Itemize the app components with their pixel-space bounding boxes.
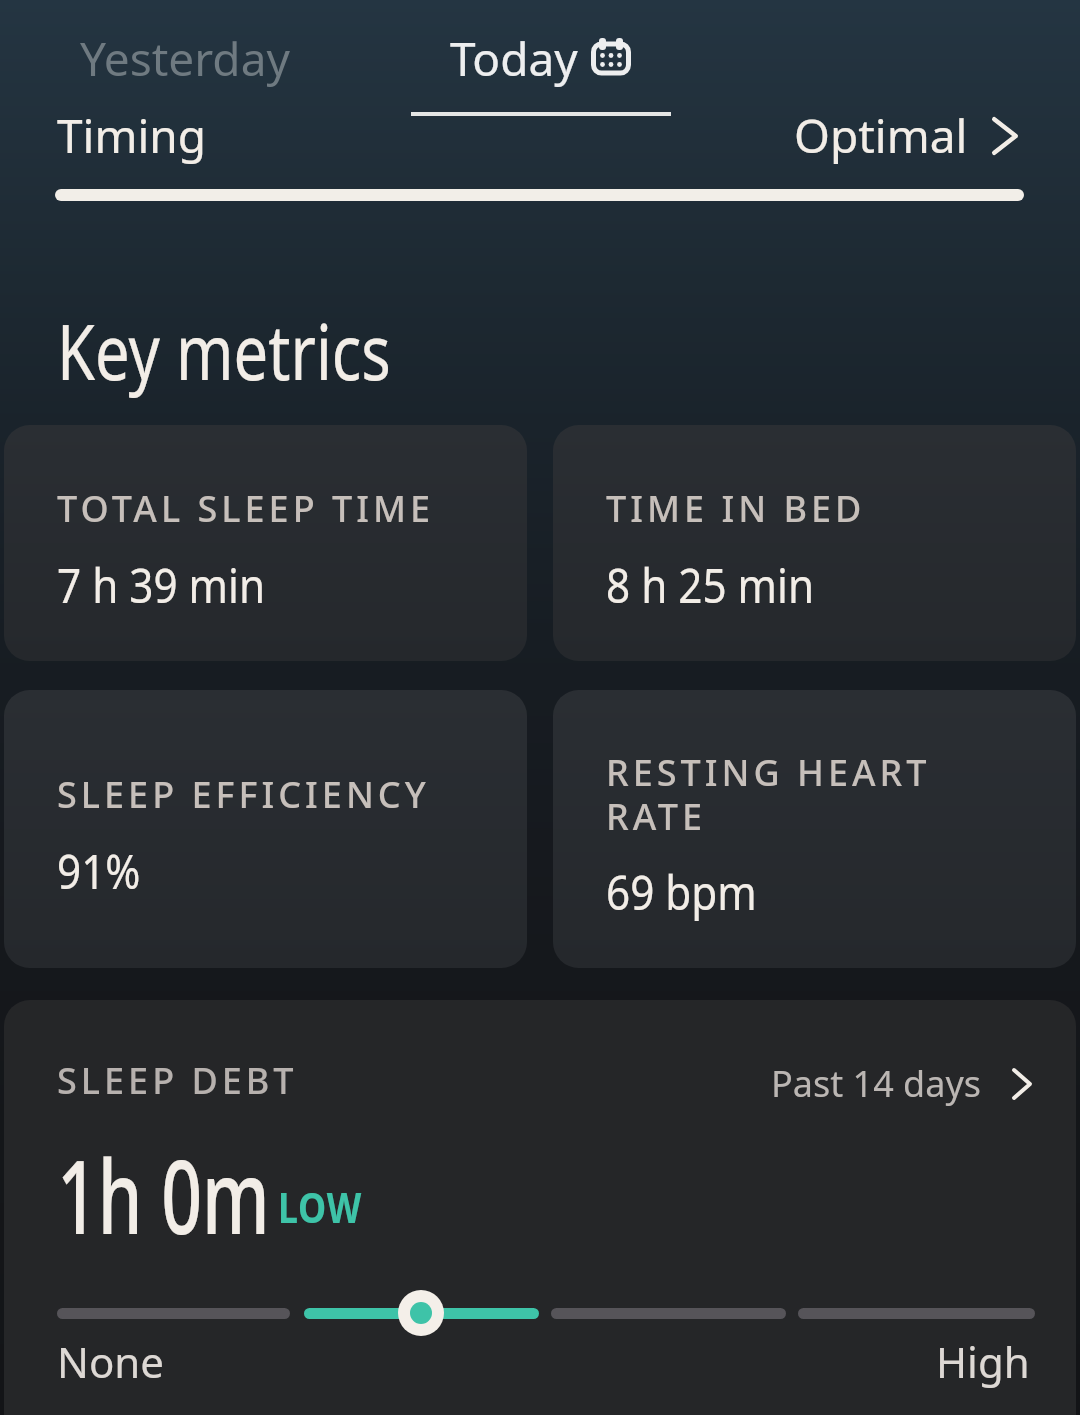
staticText: None — [57, 1333, 164, 1390]
staticText: TIME IN BED — [606, 484, 866, 533]
staticText: RESTING HEART RATE — [606, 748, 931, 840]
button[interactable]: TIME IN BED — [553, 425, 1076, 661]
staticText: TOTAL SLEEP TIME — [57, 484, 435, 533]
button[interactable]: RESTING HEART RATE — [553, 690, 1076, 968]
staticText: High — [936, 1333, 1030, 1390]
staticText: Timing — [57, 104, 207, 167]
button[interactable]: TOTAL SLEEP TIME — [4, 425, 527, 661]
staticText: 7 h 39 min — [57, 552, 266, 617]
staticText: Optimal — [794, 104, 968, 167]
button[interactable]: Today — [450, 27, 631, 90]
button[interactable]: Yesterday — [80, 27, 290, 90]
staticText: 1h 0m — [57, 1125, 270, 1264]
staticText: Today — [450, 27, 578, 90]
staticText: SLEEP EFFICIENCY — [57, 770, 430, 819]
staticText: SLEEP DEBT — [57, 1056, 298, 1105]
button[interactable]: Optimal — [0, 104, 1018, 167]
button[interactable]: Past 14 days — [0, 1059, 1032, 1108]
staticText: 91% — [57, 838, 141, 903]
staticText: Past 14 days — [771, 1059, 982, 1108]
button[interactable]: SLEEP EFFICIENCY — [4, 690, 527, 968]
staticText: Key metrics — [57, 299, 391, 403]
staticText: 69 bpm — [606, 859, 757, 924]
staticText: 8 h 25 min — [606, 552, 815, 617]
button[interactable] — [398, 1290, 444, 1336]
staticText: LOW — [278, 1178, 363, 1235]
